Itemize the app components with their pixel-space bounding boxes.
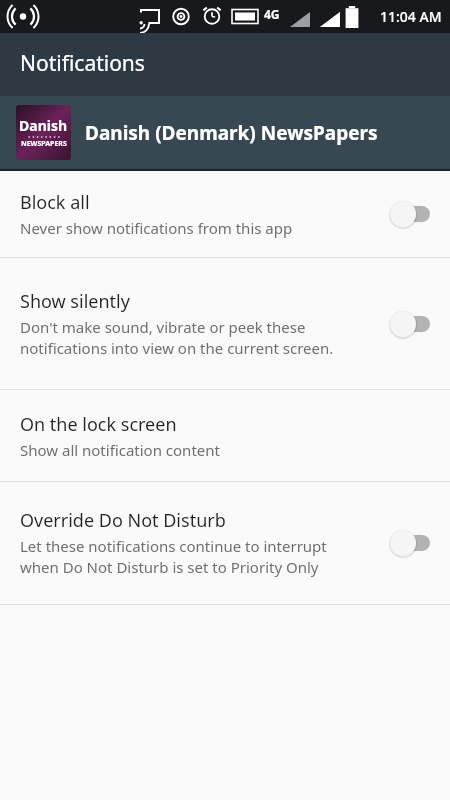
staticText: Let these notifications continue to inte… bbox=[20, 536, 366, 578]
staticText: Danish bbox=[19, 116, 68, 135]
button[interactable]: Block all bbox=[0, 171, 450, 257]
button[interactable]: Block all bbox=[378, 194, 432, 234]
staticText: 4G bbox=[264, 6, 280, 22]
button[interactable]: Override Do Not Disturb bbox=[378, 523, 432, 563]
staticText: 11:04 AM bbox=[380, 7, 442, 26]
staticText: Show silently bbox=[20, 289, 130, 314]
staticText: Never show notifications from this app bbox=[20, 218, 293, 238]
staticText: Show all notification content bbox=[20, 440, 220, 460]
button[interactable]: Show silently bbox=[0, 258, 450, 389]
staticText: NEWSPAPERS bbox=[21, 139, 67, 149]
button[interactable]: Show silently bbox=[378, 304, 432, 344]
staticText: Override Do Not Disturb bbox=[20, 508, 226, 533]
button[interactable]: On the lock screen bbox=[0, 390, 450, 481]
staticText: Danish (Denmark) NewsPapers bbox=[85, 120, 378, 146]
staticText: Notifications bbox=[20, 49, 145, 78]
button[interactable]: Override Do Not Disturb bbox=[0, 482, 450, 604]
staticText: Block all bbox=[20, 190, 90, 215]
staticText: On the lock screen bbox=[20, 412, 177, 437]
button[interactable]: Danish bbox=[0, 96, 450, 169]
staticText: Don't make sound, vibrate or peek these … bbox=[20, 317, 366, 359]
